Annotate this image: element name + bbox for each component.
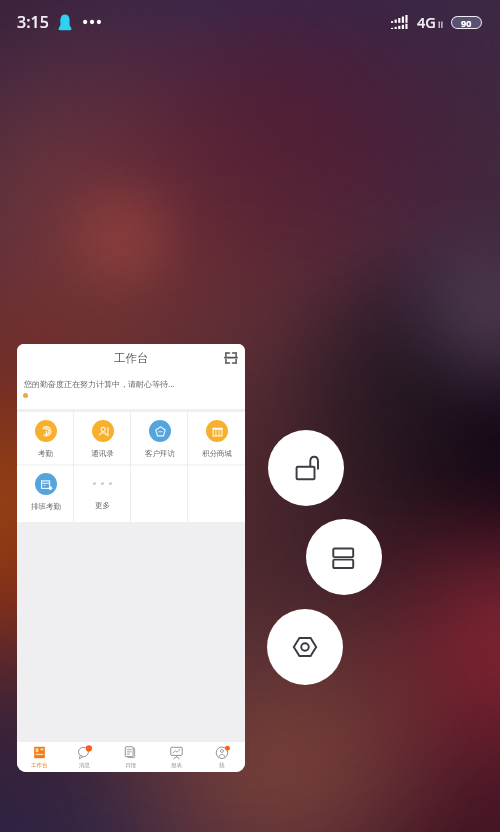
button[interactable]: 考勤 xyxy=(17,412,74,465)
staticText: 3:15 xyxy=(17,11,49,33)
staticText: 4G xyxy=(417,12,436,32)
staticText: 消息 xyxy=(79,762,90,769)
button[interactable]: 排班考勤 xyxy=(17,465,74,522)
button[interactable]: 工作台 xyxy=(17,742,62,772)
button[interactable]: 日报 xyxy=(107,742,153,772)
button[interactable]: Split screen xyxy=(306,519,382,595)
staticText: 90 xyxy=(461,17,472,28)
staticText: 我 xyxy=(219,762,225,769)
staticText: 日报 xyxy=(125,762,136,769)
staticText: 通讯录 xyxy=(91,449,114,458)
button[interactable]: 通讯录 xyxy=(74,412,131,465)
button[interactable]: App info xyxy=(267,609,343,685)
staticText: 考勤 xyxy=(38,449,53,458)
button[interactable]: 积分商城 xyxy=(188,412,245,465)
button[interactable]: 客户拜访 xyxy=(131,412,188,465)
staticText: 您的勤奋度正在努力计算中，请耐心等待... xyxy=(24,378,175,389)
staticText: 更多 xyxy=(95,501,110,510)
staticText: 客户拜访 xyxy=(145,449,175,458)
staticText: 排班考勤 xyxy=(31,502,61,511)
button[interactable]: 报表 xyxy=(153,742,199,772)
staticText: 工作台 xyxy=(114,351,149,365)
staticText: 工作台 xyxy=(31,762,48,769)
button[interactable]: Scan xyxy=(225,352,237,364)
button[interactable]: 更多 xyxy=(74,465,131,522)
button[interactable]: Lock app xyxy=(268,430,344,506)
staticText: 积分商城 xyxy=(202,449,232,458)
staticText: 报表 xyxy=(171,762,182,769)
button[interactable]: 消息 xyxy=(62,742,107,772)
button[interactable]: 我 xyxy=(199,742,245,772)
